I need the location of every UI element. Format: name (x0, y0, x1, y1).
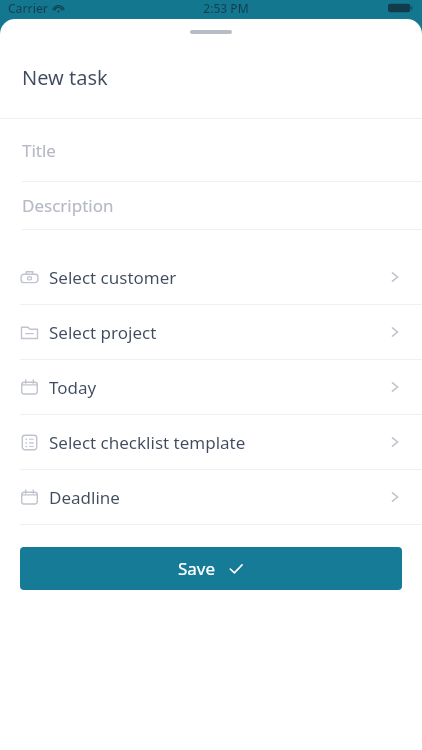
staticText: Today (49, 376, 97, 399)
staticText: 2:53 PM (203, 0, 249, 16)
staticText: Description (22, 194, 114, 217)
button[interactable]: Deadline (0, 470, 422, 524)
button[interactable]: Description (0, 182, 422, 229)
staticText: Carrier (8, 0, 48, 16)
button[interactable]: Select project (0, 305, 422, 359)
button[interactable]: Save (20, 547, 402, 590)
button[interactable]: Today (0, 360, 422, 414)
staticText: Select customer (49, 266, 177, 289)
button[interactable]: Select customer (0, 250, 422, 304)
staticText: Select checklist template (49, 431, 246, 454)
staticText: Save (178, 557, 216, 580)
button[interactable]: Select checklist template (0, 415, 422, 469)
staticText: New task (22, 64, 108, 91)
button[interactable]: Title (0, 119, 422, 181)
staticText: Select project (49, 321, 157, 344)
staticText: Deadline (49, 486, 120, 509)
staticText: Title (22, 139, 56, 162)
